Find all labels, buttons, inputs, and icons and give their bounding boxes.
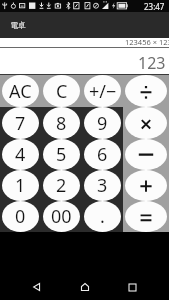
button[interactable]: 2 [41, 170, 82, 201]
button[interactable]: 電卓 [0, 12, 169, 38]
button[interactable]: Subtract [123, 139, 169, 170]
button[interactable]: Equals [123, 201, 169, 232]
staticText: . [100, 204, 105, 229]
staticText: 123456 × 123 [125, 37, 169, 46]
staticText: +/− [89, 79, 117, 104]
button[interactable]: 1 [0, 170, 41, 201]
staticText: 9 [97, 111, 108, 136]
button[interactable]: AC [0, 75, 41, 107]
button[interactable]: 00 [41, 201, 82, 232]
staticText: 123 [138, 52, 166, 74]
button[interactable]: Back [26, 276, 48, 298]
staticText: 7 [15, 111, 26, 136]
staticText: 2 [56, 173, 67, 198]
staticText: AC [9, 79, 32, 104]
staticText: 23:47 [144, 1, 165, 12]
button[interactable]: Recents [121, 276, 143, 298]
button[interactable]: Divide [123, 75, 169, 107]
staticText: 4 [15, 142, 26, 167]
button[interactable]: 8 [41, 107, 82, 139]
button[interactable]: 6 [82, 139, 123, 170]
button[interactable]: 5 [41, 139, 82, 170]
staticText: 1 [15, 173, 26, 198]
staticText: C [56, 79, 68, 104]
staticText: 6 [97, 142, 108, 167]
button[interactable]: 3 [82, 170, 123, 201]
button[interactable]: C [41, 75, 82, 107]
staticText: 0 [15, 204, 26, 229]
button[interactable]: 7 [0, 107, 41, 139]
button[interactable]: 4 [0, 139, 41, 170]
button[interactable]: Add [123, 170, 169, 201]
staticText: 8 [56, 111, 67, 136]
button[interactable]: Home [74, 276, 96, 298]
staticText: 00 [51, 204, 72, 229]
staticText: 3 [97, 173, 108, 198]
staticText: 電卓 [10, 20, 26, 30]
button[interactable]: 9 [82, 107, 123, 139]
staticText: 5 [56, 142, 67, 167]
button[interactable]: . [82, 201, 123, 232]
button[interactable]: Multiply [123, 107, 169, 139]
button[interactable]: +/− [82, 75, 123, 107]
button[interactable]: 0 [0, 201, 41, 232]
